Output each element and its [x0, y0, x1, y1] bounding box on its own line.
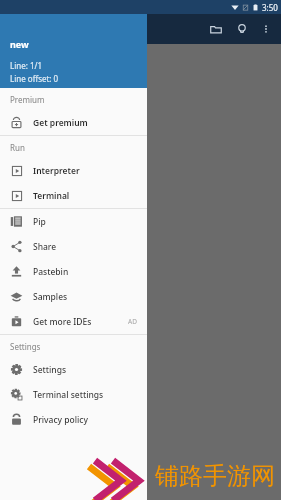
- staticText: Share: [33, 241, 57, 253]
- staticText: Interpreter: [33, 165, 80, 177]
- staticText: Pastebin: [33, 266, 69, 278]
- staticText: 铺路手游网: [155, 461, 275, 491]
- staticText: Samples: [33, 291, 68, 303]
- button[interactable]: Samples: [0, 284, 147, 309]
- button[interactable]: new: [0, 14, 147, 88]
- button[interactable]: Settings: [0, 357, 147, 382]
- staticText: Run: [10, 142, 25, 153]
- button[interactable]: Get more IDEs: [0, 309, 147, 334]
- button[interactable]: More options: [255, 18, 277, 40]
- button[interactable]: Share: [0, 234, 147, 259]
- button[interactable]: Privacy policy: [0, 407, 147, 432]
- button[interactable]: Interpreter: [0, 158, 147, 183]
- staticText: Get premium: [33, 117, 88, 129]
- staticText: Get more IDEs: [33, 316, 92, 328]
- staticText: Terminal settings: [33, 389, 104, 401]
- staticText: 3:50: [262, 2, 278, 13]
- button[interactable]: Get premium: [0, 110, 147, 135]
- staticText: Premium: [10, 94, 45, 105]
- staticText: Settings: [33, 364, 67, 376]
- staticText: AD: [128, 317, 137, 326]
- staticText: Settings: [10, 341, 41, 352]
- staticText: Line: 1/1: [10, 60, 43, 71]
- button[interactable]: Terminal: [0, 183, 147, 208]
- button[interactable]: Open file: [203, 16, 229, 42]
- button[interactable]: Hints: [229, 16, 255, 42]
- staticText: Privacy policy: [33, 414, 89, 426]
- button[interactable]: Terminal settings: [0, 382, 147, 407]
- staticText: Pip: [33, 216, 46, 228]
- staticText: Line offset: 0: [10, 73, 59, 84]
- staticText: Terminal: [33, 190, 70, 202]
- staticText: new: [10, 38, 29, 50]
- button[interactable]: Pip: [0, 209, 147, 234]
- button[interactable]: Pastebin: [0, 259, 147, 284]
